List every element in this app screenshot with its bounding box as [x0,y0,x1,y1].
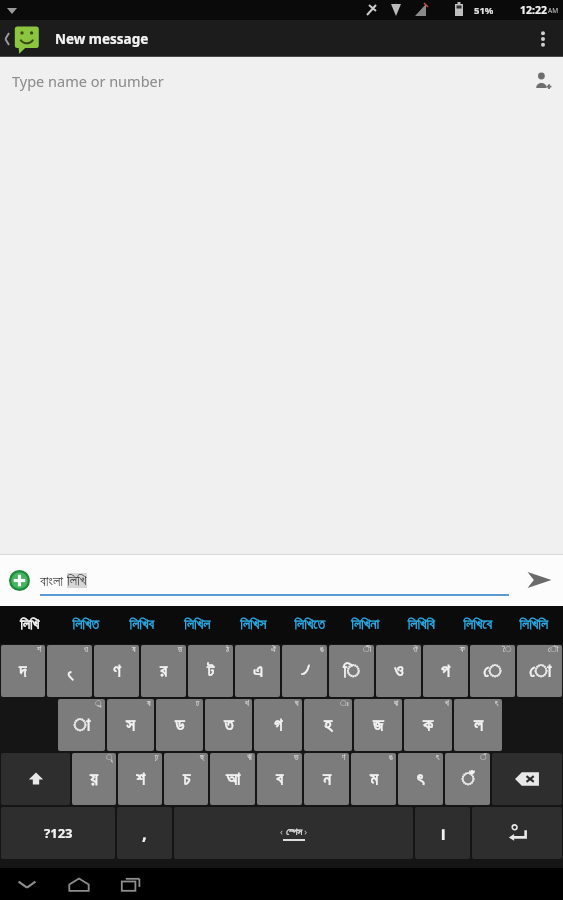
staticText: ঁ [461,771,475,788]
button[interactable]: ঙ [351,753,396,805]
button[interactable]: Send [515,556,563,604]
button[interactable]: ঃ [304,699,352,751]
staticText: ৎ [495,700,499,708]
staticText: ৃ [106,754,113,762]
button[interactable]: লিখিতে [281,606,337,644]
button[interactable]: Home [53,868,105,900]
staticText: ত [224,717,234,734]
button[interactable]: ঁ [445,753,490,805]
button[interactable]: ণ [304,753,349,805]
button[interactable]: লিখিনা [337,606,393,644]
button[interactable]: শ [1,645,45,697]
staticText: ৎ [436,754,440,762]
staticText: শ [37,646,42,654]
button[interactable]: New message [0,20,523,57]
button[interactable]: ঔ [376,645,421,697]
button[interactable]: লিখিলি [505,606,561,644]
button[interactable]: খ [404,699,452,751]
staticText: ছ [200,754,205,762]
button[interactable]: Shift [1,753,70,805]
button[interactable]: ী [329,645,374,697]
button[interactable]: লিখিস [225,606,281,644]
staticText: AM [548,6,559,15]
staticText: লিখিল [184,618,210,632]
staticText: ৈ [503,646,512,654]
staticText: লিখিনা [351,618,379,632]
button[interactable]: Add attachment [6,567,32,593]
staticText: ৌ [548,646,559,654]
button[interactable]: , [117,807,172,859]
button[interactable]: ঢ [156,699,203,751]
staticText: ঢ [196,700,200,708]
staticText: New message [55,30,149,48]
button[interactable]: ঢ় [118,753,162,805]
button[interactable]: ৎ [398,753,443,805]
button[interactable]: ভ [257,753,302,805]
button[interactable]: লিখিল [169,606,225,644]
button[interactable]: ঙ [282,645,327,697]
staticText: ঠ [226,646,230,654]
button[interactable]: ৈ [470,645,515,697]
button[interactable]: ৃ [72,753,116,805]
staticText: লিখি [67,573,87,588]
staticText: দ [19,663,27,680]
button[interactable]: লিখিব [113,606,169,644]
staticText: ব [276,771,283,788]
button[interactable]: ড [141,645,186,697]
staticText: লিখিলি [519,618,548,632]
button[interactable]: ঘ [254,699,302,751]
staticText: ‹ [280,825,286,837]
button[interactable]: ঠ [188,645,233,697]
staticText: ে [483,663,502,680]
button[interactable]: Type name or number [0,57,563,105]
staticText: । [439,822,446,845]
staticText: ঔ [413,646,418,654]
staticText: ী [363,646,371,654]
staticText: ঙ [320,646,324,654]
button[interactable]: ও [47,645,92,697]
button[interactable]: ৎ [454,699,502,751]
staticText: ট [207,663,214,680]
staticText: ন [323,771,331,788]
button[interactable]: ঝ [354,699,402,751]
staticText: থ [245,700,249,708]
staticText: ম [370,771,378,788]
button[interactable]: Add recipient [523,61,563,101]
button[interactable]: লিখিত [57,606,113,644]
button[interactable]: ঐ [235,645,280,697]
staticText: লিখিত [72,618,99,632]
button[interactable]: ্র [58,699,105,751]
staticText: শ [136,771,145,788]
staticText: 12:22 [520,3,547,17]
button[interactable]: Enter [472,807,562,859]
staticText: 51% [474,4,494,17]
button[interactable]: Space [174,807,413,859]
button[interactable]: ষ [107,699,154,751]
button[interactable]: । [415,807,470,859]
button[interactable]: থ [205,699,252,751]
button[interactable]: Hide keyboard [1,868,53,900]
staticText: ঘ [295,700,299,708]
button[interactable]: লিখিবি [393,606,449,644]
staticText: য় [90,771,98,788]
button[interactable]: লিখি [2,606,57,644]
staticText: ড [175,717,185,734]
button[interactable]: ঋ [210,753,255,805]
button[interactable]: Recent apps [105,868,157,900]
staticText: ও [394,663,404,680]
button[interactable]: More options [523,20,563,57]
button[interactable]: Backspace [492,753,562,805]
staticText: ফ [460,646,465,654]
button[interactable]: ষ [94,645,139,697]
staticText: › [302,825,308,837]
button[interactable]: ছ [164,753,208,805]
staticText: , [142,822,147,845]
staticText: লিখিব [129,618,154,632]
button[interactable]: ফ [423,645,468,697]
staticText: ৻ [67,663,73,680]
button[interactable]: ?123 [1,807,115,859]
button[interactable]: লিখিবে [449,606,505,644]
button[interactable]: ৌ [517,645,562,697]
button[interactable]: বাংলা [40,554,509,606]
staticText: চ [183,771,190,788]
